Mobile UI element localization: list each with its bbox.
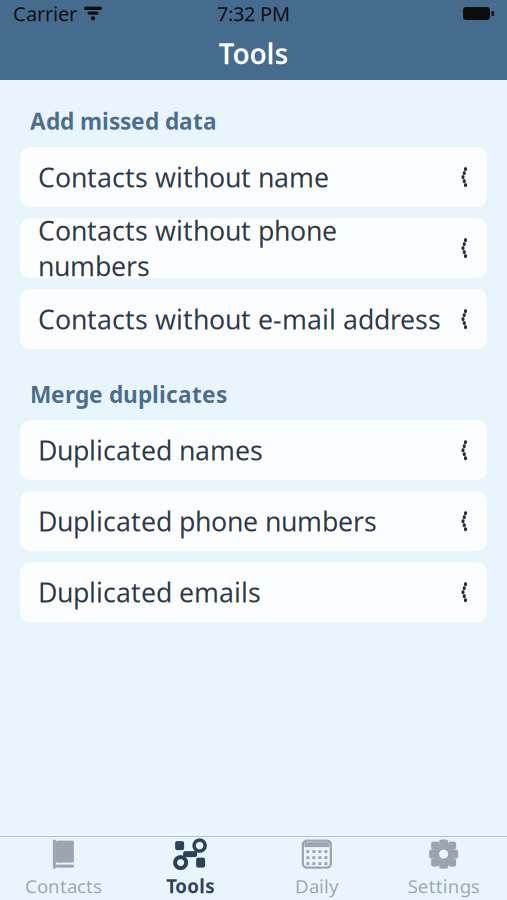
staticText: Duplicated names	[38, 432, 263, 468]
button[interactable]: Contacts	[0, 837, 127, 899]
staticText: 7:32 PM	[217, 0, 290, 27]
button[interactable]: Daily	[253, 837, 380, 899]
button[interactable]: Contacts without e-mail address	[20, 289, 487, 349]
staticText: Tools	[166, 874, 214, 898]
staticText: Merge duplicates	[30, 379, 227, 409]
staticText: Contacts without phone numbers	[38, 213, 337, 283]
button[interactable]: Duplicated names	[20, 420, 487, 480]
button[interactable]: Duplicated emails	[20, 562, 487, 622]
button[interactable]: Contacts without name	[20, 147, 487, 207]
staticText: Daily	[295, 874, 339, 898]
staticText: Tools	[218, 35, 288, 72]
staticText: Contacts without e-mail address	[38, 301, 441, 337]
staticText: Carrier	[13, 0, 77, 27]
staticText: Duplicated phone numbers	[38, 503, 377, 539]
staticText: Contacts without name	[38, 159, 329, 195]
button[interactable]: Duplicated phone numbers	[20, 491, 487, 551]
staticText: Contacts	[25, 874, 102, 898]
button[interactable]: Contacts without phone numbers	[20, 218, 487, 278]
staticText: Settings	[408, 874, 480, 898]
button[interactable]: Settings	[380, 837, 507, 899]
button[interactable]: Tools	[127, 837, 254, 899]
staticText: Duplicated emails	[38, 574, 261, 610]
staticText: Add missed data	[30, 106, 217, 136]
